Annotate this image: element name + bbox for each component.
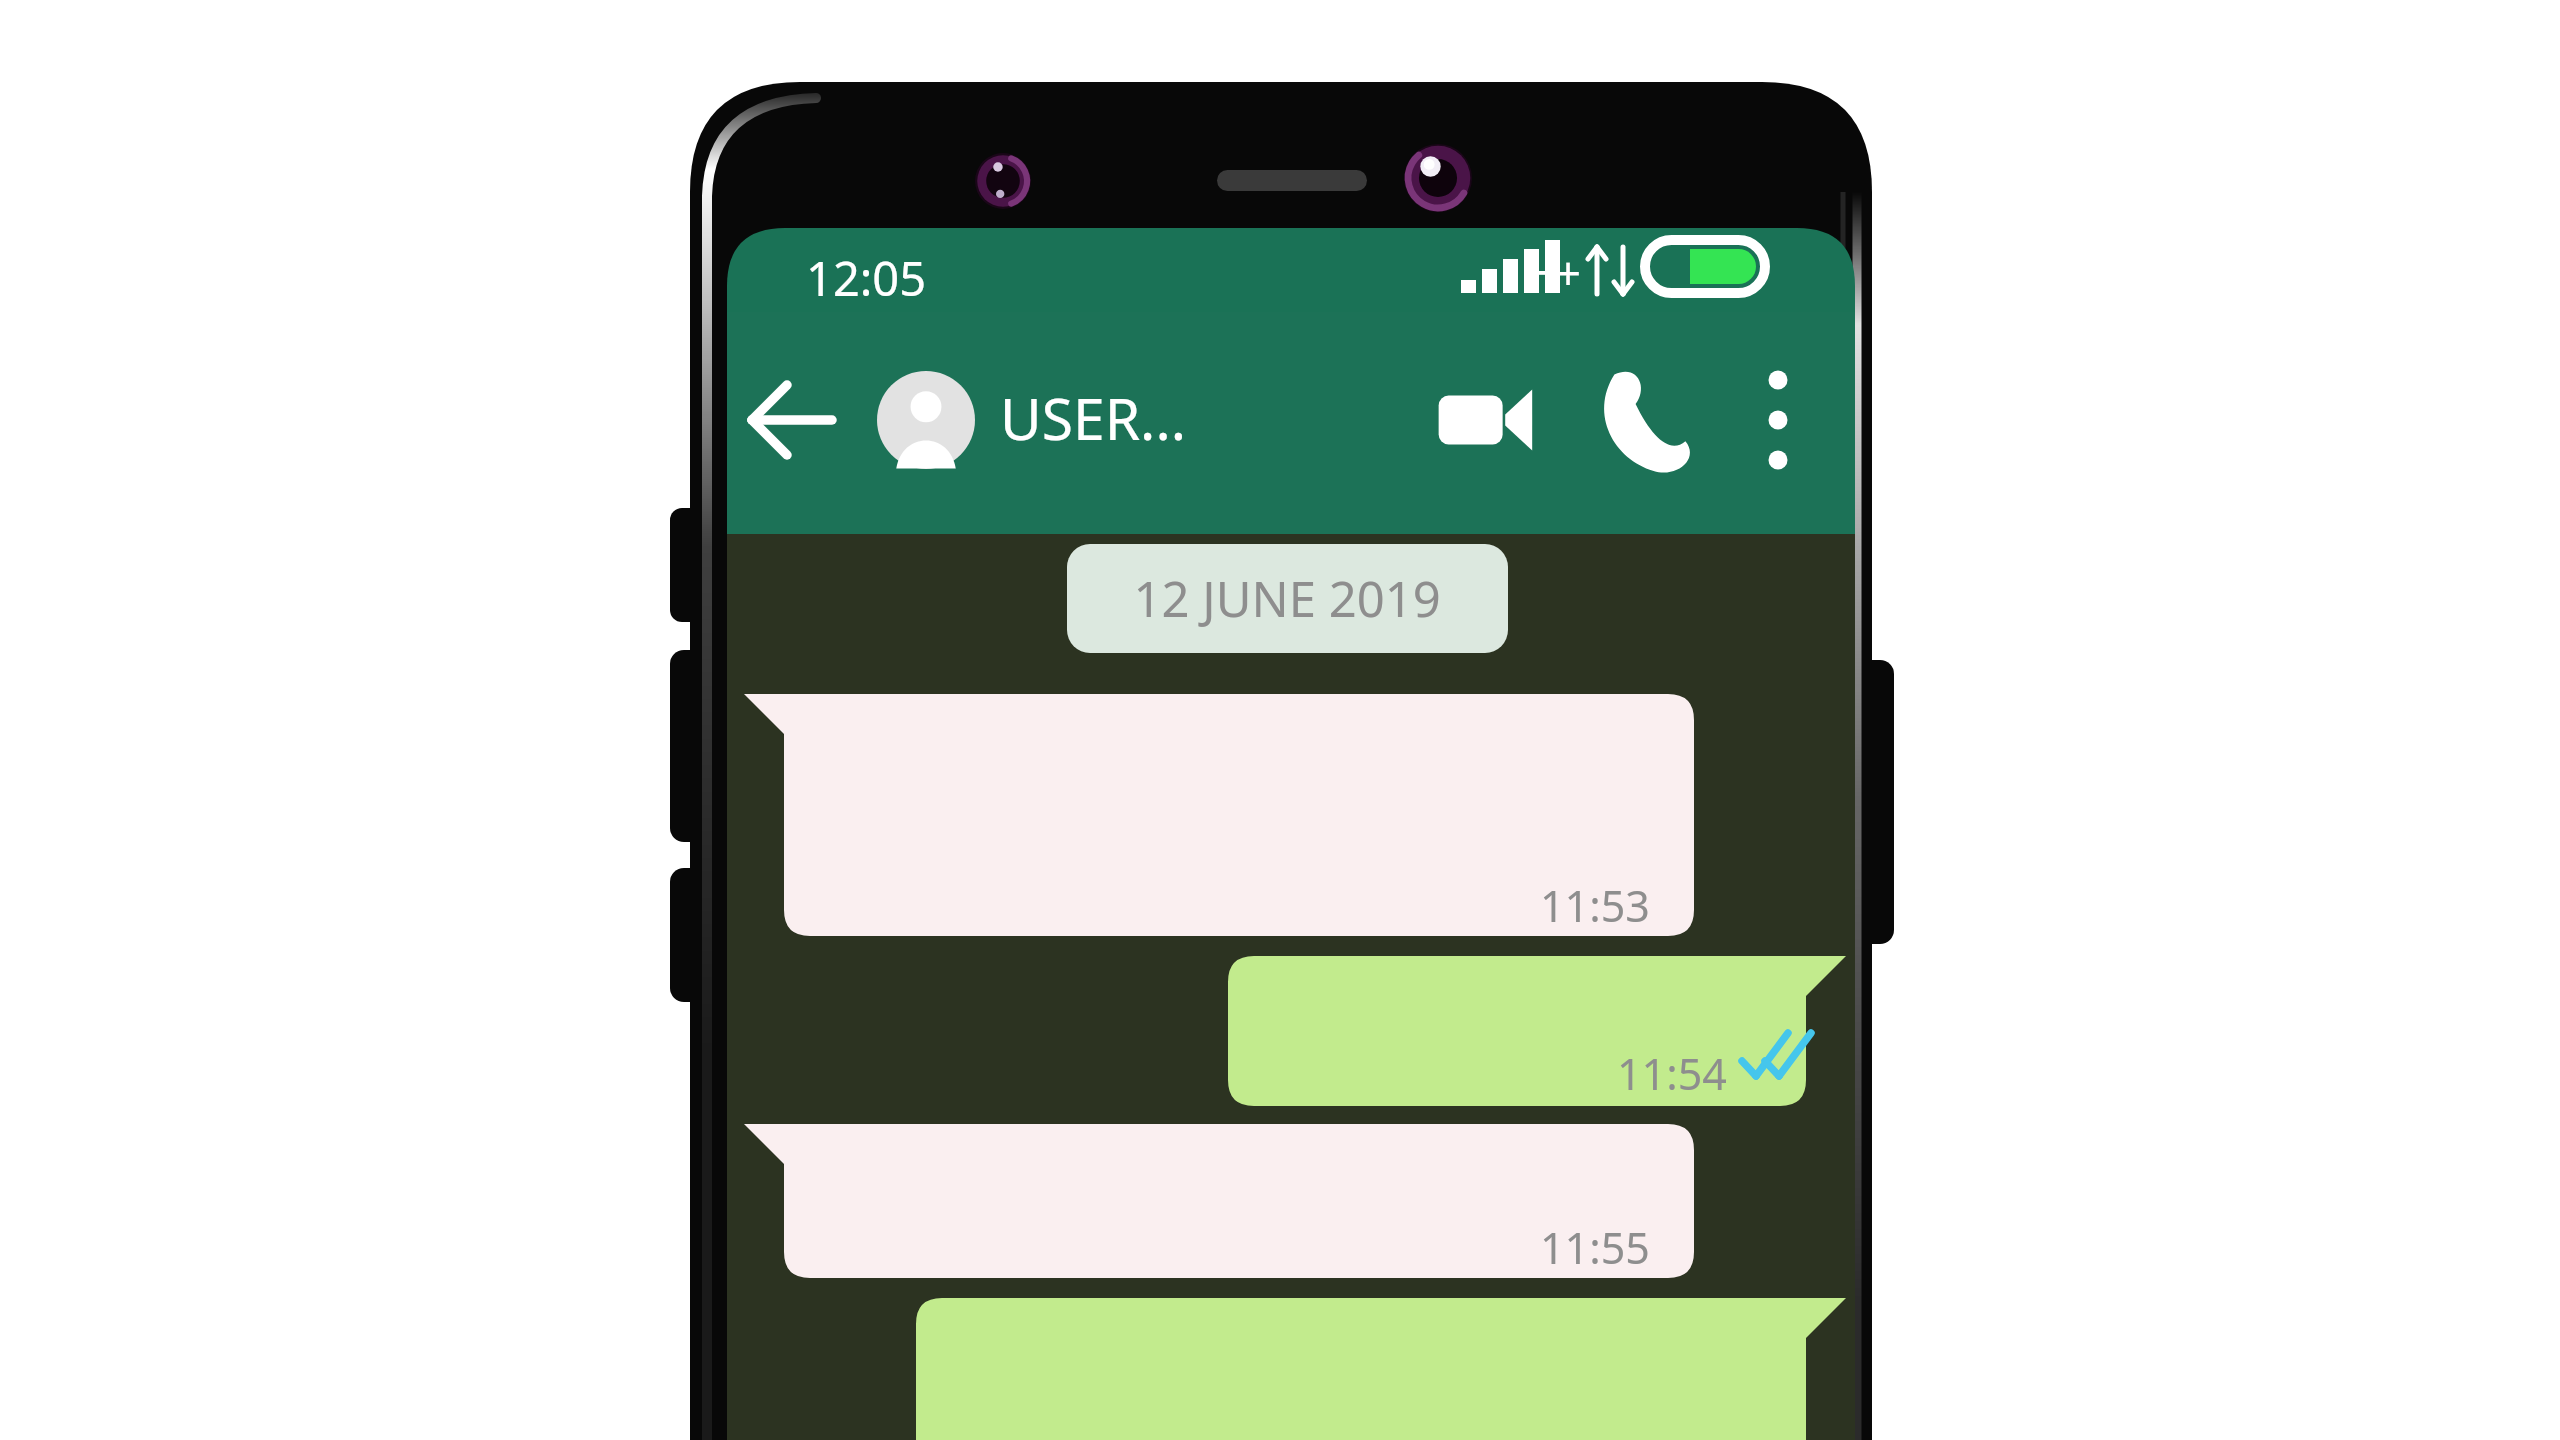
button[interactable]: USER... [996, 360, 1230, 478]
button[interactable]: Received message 11:55 [744, 1124, 1694, 1278]
button[interactable]: Back [752, 366, 834, 474]
button[interactable]: Received message 11:53 [744, 694, 1694, 936]
button[interactable]: Sent message [916, 1298, 1846, 1440]
button[interactable]: Video call [1442, 354, 1562, 484]
button[interactable]: Voice call [1596, 354, 1716, 484]
button[interactable]: Sent message 11:54, read [1228, 956, 1846, 1106]
button[interactable]: More options [1736, 350, 1830, 488]
button[interactable]: Contact photo [862, 348, 992, 492]
